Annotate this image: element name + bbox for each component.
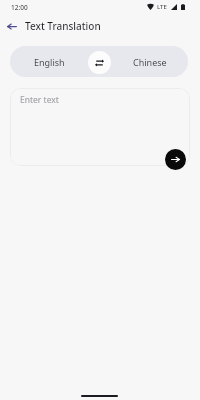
staticText: Text Translation bbox=[25, 19, 101, 33]
button[interactable]: Enter text bbox=[10, 88, 190, 166]
button[interactable]: Translate bbox=[165, 149, 186, 170]
staticText: Enter text bbox=[20, 94, 59, 106]
button[interactable]: Swap languages bbox=[88, 51, 111, 74]
button[interactable]: English bbox=[10, 46, 88, 77]
button[interactable]: Chinese bbox=[112, 46, 188, 77]
button[interactable]: Back bbox=[2, 16, 22, 36]
staticText: English bbox=[34, 56, 65, 68]
staticText: LTE bbox=[157, 3, 167, 11]
staticText: Chinese bbox=[133, 56, 167, 68]
staticText: 12:00 bbox=[11, 3, 28, 12]
